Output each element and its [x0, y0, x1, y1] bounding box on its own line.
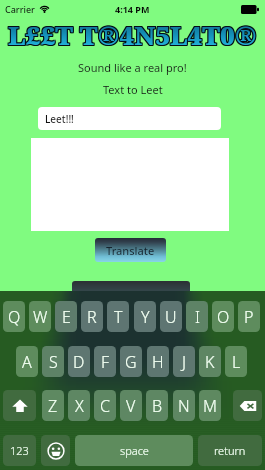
staticText: H — [152, 351, 164, 373]
button[interactable]: space — [75, 435, 193, 466]
button[interactable]: G — [120, 346, 142, 377]
button[interactable]: A — [16, 346, 38, 377]
staticText: R — [87, 306, 97, 328]
staticText: C — [100, 395, 110, 417]
staticText: Text to Leet — [103, 82, 163, 97]
button[interactable]: T — [107, 301, 129, 332]
staticText: L££T T®4N5L4T0® — [8, 18, 257, 53]
staticText: L££T T®4N5L4T0® — [9, 16, 258, 51]
button[interactable]: S — [42, 346, 64, 377]
button[interactable]: E — [55, 301, 77, 332]
button[interactable]: Y — [134, 301, 156, 332]
button[interactable]: O — [212, 301, 234, 332]
staticText: G — [125, 351, 137, 373]
staticText: F — [101, 351, 110, 373]
staticText: I — [195, 306, 200, 328]
staticText: U — [165, 306, 177, 328]
button[interactable]: Z — [42, 390, 64, 421]
staticText: X — [75, 395, 84, 417]
staticText: S — [49, 351, 58, 373]
staticText: L££T T®4N5L4T0® — [7, 18, 256, 53]
button[interactable]: L — [225, 346, 247, 377]
button[interactable]: Leet!!! — [38, 107, 221, 130]
staticText: K — [205, 351, 215, 373]
button[interactable]: I — [186, 301, 208, 332]
button[interactable]: F — [94, 346, 116, 377]
button[interactable]: Translate — [95, 238, 166, 262]
button[interactable]: K — [199, 346, 221, 377]
staticText: P — [244, 306, 254, 328]
staticText: Translate — [106, 243, 155, 258]
button[interactable]: Q — [3, 301, 25, 332]
staticText: L££T T®4N5L4T0® — [7, 17, 256, 52]
staticText: E — [62, 306, 71, 328]
staticText: L — [232, 351, 241, 373]
button[interactable]: return — [198, 435, 262, 466]
staticText: Sound like a real pro! — [78, 60, 187, 75]
staticText: N — [178, 395, 190, 417]
staticText: M — [203, 395, 217, 417]
button[interactable]: N — [173, 390, 195, 421]
staticText: L££T T®4N5L4T0® — [8, 16, 257, 51]
staticText: J — [182, 351, 187, 373]
button[interactable]: Backspace — [233, 390, 262, 421]
staticText: L££T T®4N5L4T0® — [8, 17, 257, 52]
button[interactable]: H — [147, 346, 169, 377]
staticText: L££T T®4N5L4T0® — [9, 17, 258, 52]
button[interactable]: 123 — [3, 435, 36, 466]
staticText: A — [22, 351, 32, 373]
button[interactable]: M — [199, 390, 221, 421]
staticText: Z — [48, 395, 58, 417]
button[interactable]: R — [81, 301, 103, 332]
staticText: Carrier — [5, 3, 35, 15]
staticText: L££T T®4N5L4T0® — [9, 18, 258, 53]
button[interactable]: B — [146, 390, 168, 421]
staticText: O — [217, 306, 230, 328]
button[interactable]: C — [94, 390, 116, 421]
staticText: 4:14 PM — [115, 3, 150, 15]
staticText: space — [120, 443, 149, 458]
staticText: Y — [141, 306, 150, 328]
button[interactable]: X — [68, 390, 90, 421]
button[interactable]: P — [238, 301, 260, 332]
button[interactable]: D — [68, 346, 90, 377]
staticText: V — [126, 395, 136, 417]
button[interactable]: U — [160, 301, 182, 332]
button[interactable]: W — [29, 301, 51, 332]
staticText: B — [152, 395, 163, 417]
button[interactable]: J — [173, 346, 195, 377]
button[interactable]: Shift — [3, 390, 36, 421]
staticText: D — [73, 351, 85, 373]
staticText: W — [33, 306, 48, 328]
staticText: T — [114, 306, 123, 328]
button[interactable]: V — [120, 390, 142, 421]
staticText: Q — [8, 306, 21, 328]
staticText: return — [214, 443, 246, 458]
staticText: L££T T®4N5L4T0® — [7, 16, 256, 51]
staticText: 123 — [10, 443, 29, 458]
staticText: Leet!!! — [45, 112, 74, 126]
button[interactable]: Emoji — [41, 435, 70, 466]
